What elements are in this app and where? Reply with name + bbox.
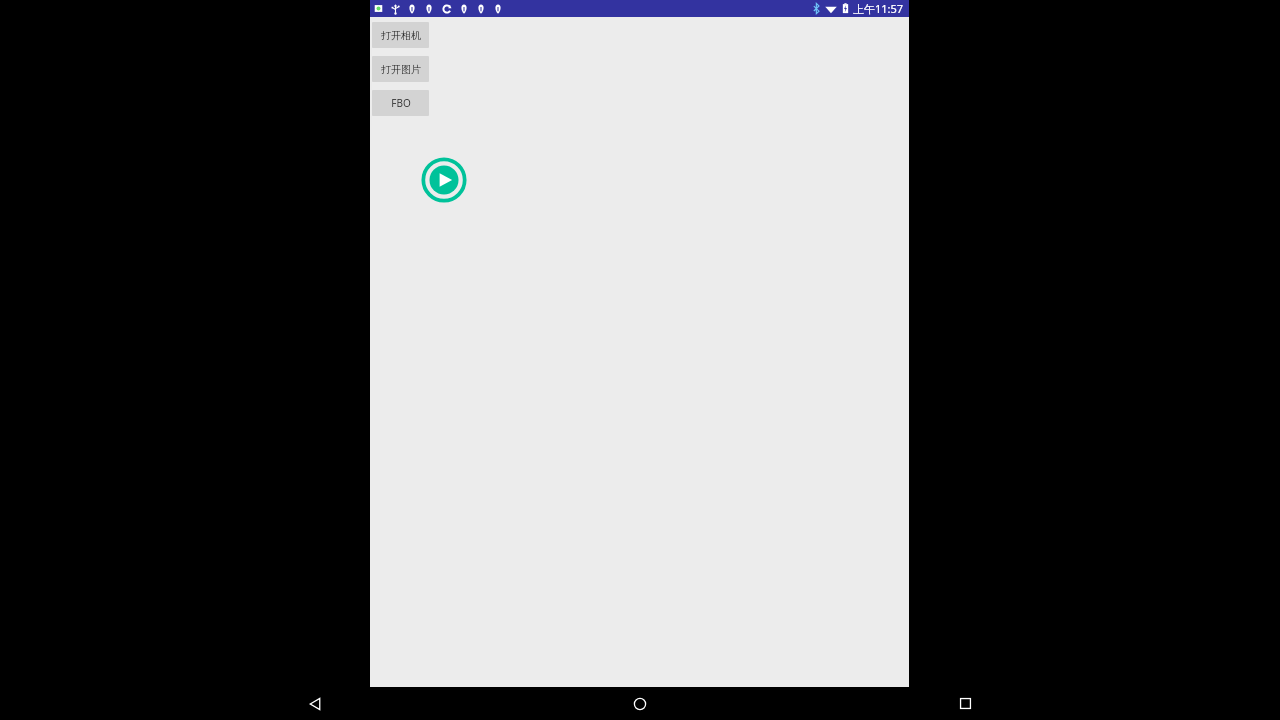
button[interactable]: Recents <box>942 687 988 720</box>
button[interactable]: FBO <box>372 90 429 116</box>
button[interactable]: Back <box>292 687 338 720</box>
button[interactable]: 打开相机 <box>372 22 429 48</box>
button[interactable]: Home <box>617 687 663 720</box>
staticText: FBO <box>391 96 411 110</box>
staticText: 上午11:57 <box>853 1 904 16</box>
button[interactable]: Play <box>422 158 466 202</box>
staticText: 打开相机 <box>381 29 421 42</box>
button[interactable]: 打开图片 <box>372 56 429 82</box>
staticText: 打开图片 <box>381 63 421 76</box>
